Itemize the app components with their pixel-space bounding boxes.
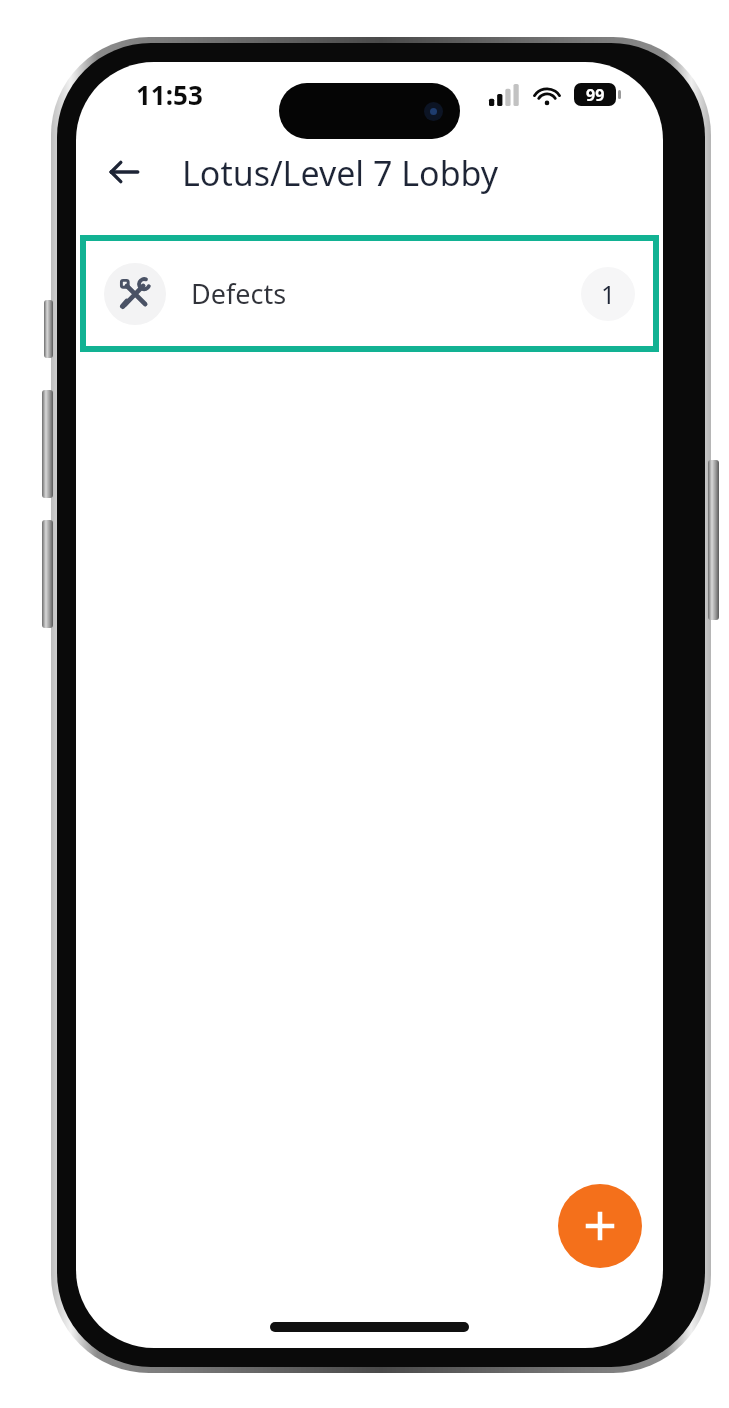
staticText: Defects bbox=[191, 275, 287, 312]
button[interactable]: Defects bbox=[80, 235, 659, 352]
staticText: 11:53 bbox=[136, 77, 203, 112]
staticText: 1 bbox=[601, 277, 616, 311]
staticText: Lotus/Level 7 Lobby bbox=[182, 150, 499, 196]
button[interactable]: Back bbox=[95, 143, 153, 201]
staticText: 99 bbox=[586, 84, 605, 106]
button[interactable]: Add bbox=[558, 1184, 642, 1268]
